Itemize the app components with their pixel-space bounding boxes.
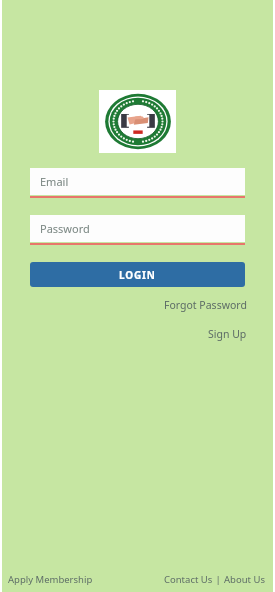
button[interactable]: Contact Us [164,573,213,586]
button[interactable]: About Us [224,573,265,586]
staticText: Contact Us [164,573,213,586]
staticText: Email [40,174,69,189]
staticText: | [213,573,224,586]
button[interactable]: Password [30,215,245,245]
staticText: Forgot Password [164,298,247,312]
staticText: About Us [224,573,265,586]
staticText: Apply Membership [8,573,93,586]
button[interactable]: Apply Membership [8,573,93,586]
other: Credit cooperative logo [103,92,173,151]
staticText: Password [40,221,90,236]
staticText: Sign Up [208,327,247,341]
button[interactable]: Sign Up [208,325,247,343]
staticText: LOGIN [119,268,156,282]
button[interactable]: LOGIN [30,262,245,287]
button[interactable]: Email [30,168,245,198]
button[interactable]: Forgot Password [164,296,247,314]
